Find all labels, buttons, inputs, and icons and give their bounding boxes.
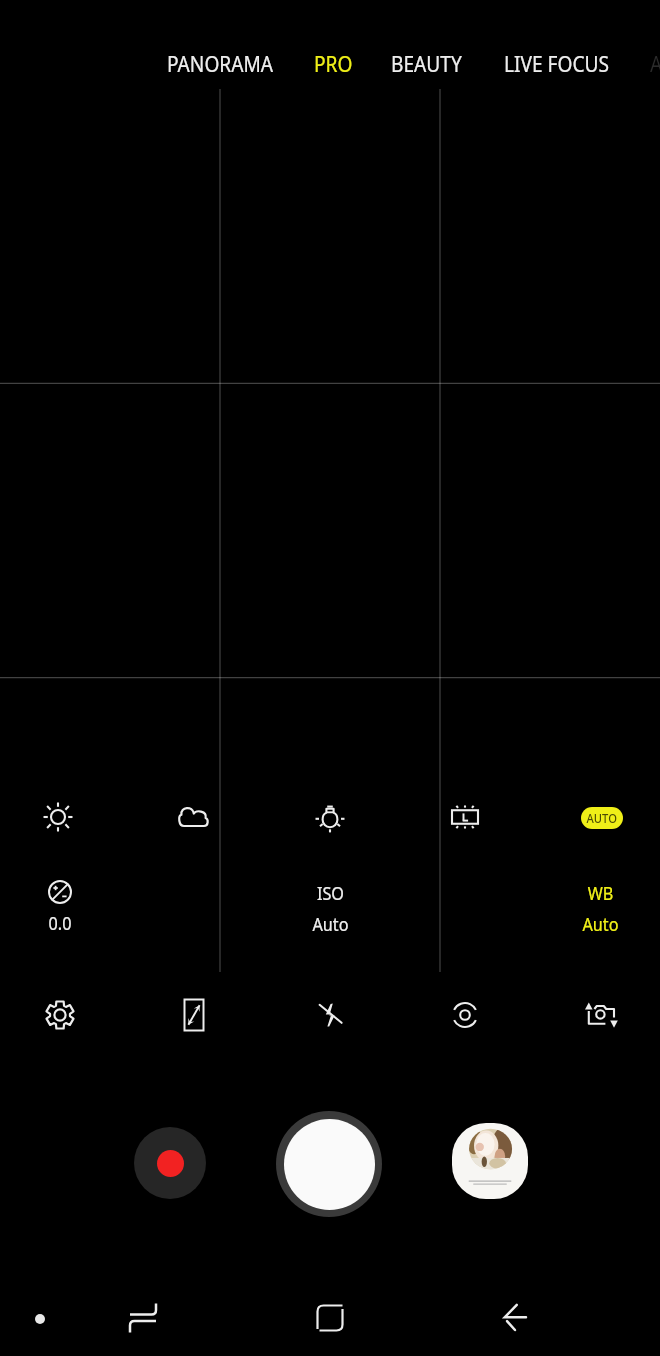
button[interactable]: Take photo (276, 1111, 382, 1217)
button[interactable]: LIVE FOCUS (490, 41, 639, 85)
button[interactable]: Record video (134, 1127, 206, 1199)
button[interactable]: Fluorescent white balance (445, 797, 485, 837)
staticText: AUTO (650, 48, 660, 78)
button[interactable]: Cloudy white balance (174, 797, 214, 837)
button[interactable]: PRO (300, 41, 373, 85)
button[interactable]: Page indicator (35, 1314, 45, 1324)
button[interactable]: ISO Auto (270, 873, 390, 935)
button[interactable]: Aspect ratio (172, 993, 216, 1037)
button[interactable]: White balance Auto (540, 873, 660, 935)
staticText: Auto (312, 912, 349, 935)
button[interactable]: PANORAMA (153, 41, 303, 85)
staticText: ISO (316, 881, 344, 904)
button[interactable]: Incandescent white balance (310, 797, 350, 837)
staticText: BEAUTY (391, 48, 462, 78)
button[interactable]: Settings (38, 993, 82, 1037)
button[interactable]: Home (307, 1295, 353, 1341)
button[interactable]: Exposure value 0.0 (0, 873, 120, 935)
button[interactable]: Gallery (452, 1123, 528, 1199)
button[interactable]: AUTO (581, 807, 623, 829)
staticText: 0.0 (48, 911, 72, 934)
staticText: PANORAMA (167, 48, 273, 78)
button[interactable]: Daylight white balance (38, 797, 78, 837)
button[interactable]: Flash off (308, 993, 352, 1037)
button[interactable]: Recent apps (120, 1295, 166, 1341)
staticText: Auto (582, 912, 619, 935)
staticText: LIVE FOCUS (504, 48, 609, 78)
button[interactable]: Metering mode (443, 993, 487, 1037)
button[interactable]: AUTO (636, 41, 660, 85)
button[interactable]: BEAUTY (377, 41, 487, 85)
button[interactable]: Switch camera (579, 993, 623, 1037)
staticText: AUTO (586, 809, 617, 827)
staticText: PRO (314, 48, 353, 78)
staticText: WB (587, 881, 614, 904)
button[interactable]: Back (491, 1295, 537, 1341)
